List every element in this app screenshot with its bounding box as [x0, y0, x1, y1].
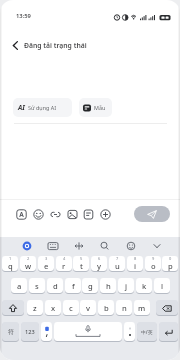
button[interactable]: b: [98, 300, 114, 316]
staticText: k: [142, 281, 147, 291]
staticText: 符: [8, 328, 14, 336]
button[interactable]: 2: [20, 256, 36, 272]
staticText: t: [80, 261, 83, 271]
button[interactable]: k: [136, 278, 152, 294]
button[interactable]: j: [118, 278, 134, 294]
button[interactable]: 3: [38, 256, 54, 272]
staticText: 5: [80, 256, 83, 261]
button[interactable]: [16, 209, 26, 219]
button[interactable]: [156, 300, 178, 316]
button[interactable]: z: [27, 300, 43, 316]
staticText: Mẫu: [94, 104, 106, 111]
staticText: x: [51, 303, 56, 313]
button[interactable]: 9: [145, 256, 161, 272]
staticText: 4: [63, 256, 66, 261]
button[interactable]: [50, 209, 60, 219]
staticText: AI: [18, 103, 25, 112]
staticText: f: [72, 281, 75, 291]
staticText: g: [88, 281, 93, 291]
button[interactable]: [159, 322, 178, 342]
button[interactable]: 符: [2, 322, 19, 342]
button[interactable]: 0: [162, 256, 178, 272]
button[interactable]: 6: [91, 256, 107, 272]
button[interactable]: n: [116, 300, 132, 316]
button[interactable]: [2, 300, 24, 316]
staticText: 1: [9, 256, 12, 261]
staticText: c: [69, 303, 73, 313]
staticText: h: [106, 281, 111, 291]
staticText: v: [86, 303, 91, 313]
staticText: a: [17, 281, 22, 291]
staticText: 中/英: [141, 329, 153, 336]
button[interactable]: 7: [109, 256, 125, 272]
button[interactable]: d: [47, 278, 63, 294]
staticText: 3: [45, 256, 48, 261]
staticText: Đăng tải trạng thái: [24, 41, 87, 50]
button[interactable]: v: [80, 300, 96, 316]
button[interactable]: [33, 209, 43, 219]
button[interactable]: s: [29, 278, 45, 294]
button[interactable]: [100, 209, 110, 219]
button[interactable]: AI: [13, 98, 72, 117]
button[interactable]: m: [134, 300, 150, 316]
staticText: 6: [98, 256, 101, 261]
staticText: q: [8, 261, 13, 271]
staticText: j: [125, 281, 128, 291]
button[interactable]: 5: [73, 256, 89, 272]
button[interactable]: [134, 206, 170, 222]
button[interactable]: 4: [56, 256, 72, 272]
button[interactable]: x: [45, 300, 61, 316]
button[interactable]: 8: [127, 256, 143, 272]
button[interactable]: [12, 41, 19, 50]
staticText: b: [104, 303, 109, 313]
button[interactable]: [124, 322, 135, 342]
button[interactable]: 123: [21, 322, 39, 342]
button[interactable]: f: [65, 278, 81, 294]
staticText: 8: [134, 256, 137, 261]
staticText: w: [25, 261, 32, 271]
staticText: e: [44, 261, 49, 271]
staticText: 9: [152, 256, 155, 261]
staticText: u: [115, 261, 120, 271]
button[interactable]: Mẫu: [79, 98, 112, 117]
button[interactable]: [83, 209, 93, 219]
staticText: d: [53, 281, 58, 291]
button[interactable]: [41, 322, 52, 342]
button[interactable]: l: [154, 278, 170, 294]
staticText: 123: [25, 328, 35, 336]
button[interactable]: [54, 322, 122, 342]
staticText: i: [134, 261, 137, 271]
staticText: Sử dụng AI: [28, 104, 56, 111]
staticText: 13:59: [16, 12, 31, 20]
staticText: z: [33, 303, 37, 313]
staticText: s: [35, 281, 39, 291]
staticText: m: [138, 303, 146, 313]
staticText: 7: [116, 256, 119, 261]
staticText: n: [122, 303, 127, 313]
staticText: o: [151, 261, 156, 271]
staticText: l: [161, 281, 164, 291]
button[interactable]: h: [100, 278, 116, 294]
staticText: p: [168, 261, 173, 271]
staticText: 0: [169, 256, 172, 261]
button[interactable]: c: [63, 300, 79, 316]
button[interactable]: 1: [2, 256, 18, 272]
staticText: y: [97, 261, 102, 271]
button[interactable]: 中/英: [137, 322, 157, 342]
staticText: 2: [27, 256, 30, 261]
button[interactable]: g: [82, 278, 98, 294]
button[interactable]: [67, 209, 77, 219]
button[interactable]: a: [11, 278, 27, 294]
staticText: r: [62, 261, 66, 271]
